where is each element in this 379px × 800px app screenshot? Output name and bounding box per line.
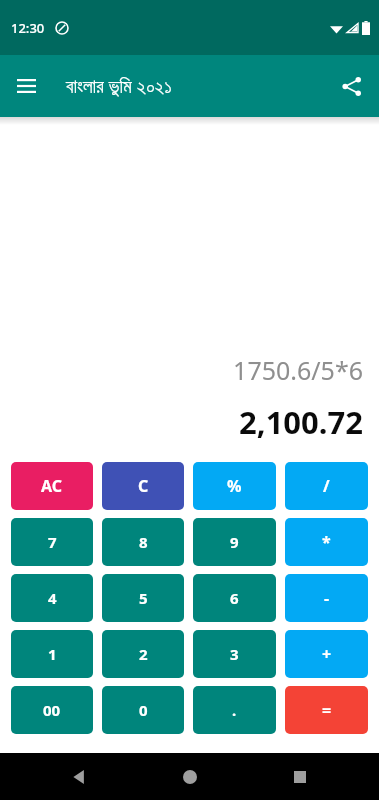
staticText: % [227, 475, 242, 497]
button[interactable]: . [193, 686, 276, 734]
staticText: AC [41, 475, 63, 497]
staticText: 0 [139, 700, 148, 720]
button[interactable]: - [285, 574, 368, 622]
staticText: 6 [230, 588, 239, 608]
button[interactable]: / [285, 462, 368, 510]
staticText: 1 [48, 644, 57, 664]
button[interactable]: = [285, 686, 368, 734]
button[interactable]: 9 [193, 518, 276, 566]
staticText: - [324, 587, 330, 609]
staticText: 2 [139, 644, 148, 664]
staticText: 9 [230, 532, 239, 552]
button[interactable]: % [193, 462, 276, 510]
staticText: . [232, 700, 237, 720]
staticText: 12:30 [11, 19, 45, 37]
button[interactable]: 7 [11, 518, 93, 566]
button[interactable]: 00 [11, 686, 93, 734]
staticText: / [323, 475, 330, 497]
staticText: বাংলার ভুমি ২০২১ [66, 73, 172, 99]
staticText: C [138, 475, 149, 497]
button[interactable]: C [102, 462, 184, 510]
button[interactable]: 0 [102, 686, 184, 734]
staticText: + [322, 643, 332, 665]
staticText: 1750.6/5*6 [0, 353, 363, 387]
staticText: 5 [139, 588, 148, 608]
button[interactable]: 8 [102, 518, 184, 566]
button[interactable]: AC [11, 462, 93, 510]
staticText: 8 [139, 532, 148, 552]
staticText: 7 [48, 532, 57, 552]
button[interactable]: 4 [11, 574, 93, 622]
button[interactable]: 6 [193, 574, 276, 622]
button[interactable]: 3 [193, 630, 276, 678]
button[interactable]: Share [331, 66, 371, 106]
button[interactable]: + [285, 630, 368, 678]
staticText: * [322, 531, 331, 553]
staticText: 00 [43, 700, 61, 720]
staticText: 2,100.72 [0, 401, 363, 443]
button[interactable]: Menu [6, 66, 46, 106]
button[interactable]: 1 [11, 630, 93, 678]
button[interactable]: 5 [102, 574, 184, 622]
button[interactable]: 2 [102, 630, 184, 678]
button[interactable]: * [285, 518, 368, 566]
staticText: = [322, 699, 332, 721]
staticText: 4 [48, 588, 57, 608]
staticText: 3 [230, 644, 239, 664]
